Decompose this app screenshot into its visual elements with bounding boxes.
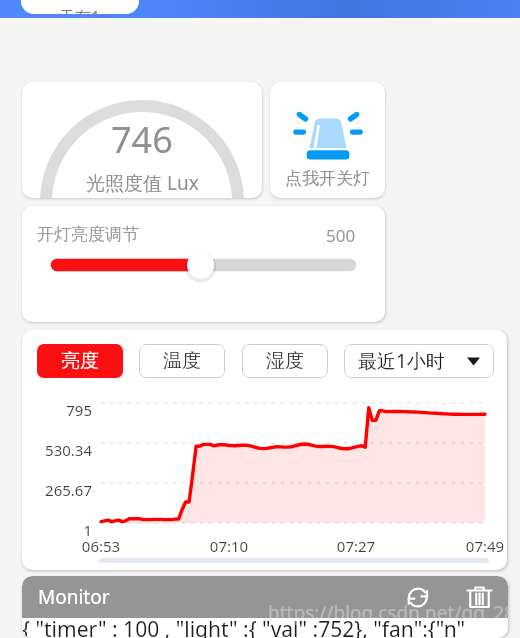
button[interactable]: 温度	[139, 344, 225, 378]
staticText: 07:49	[455, 536, 507, 556]
staticText: 06:53	[71, 536, 131, 556]
button[interactable]: Delete	[460, 578, 498, 616]
staticText: 点我开关灯	[285, 168, 370, 189]
button[interactable]: 天车1	[21, 0, 139, 14]
button[interactable]: 湿度	[242, 344, 328, 378]
button[interactable]: Refresh	[400, 578, 438, 616]
staticText: Monitor	[38, 584, 110, 610]
staticText: 07:10	[199, 536, 259, 556]
staticText: 746	[111, 115, 173, 164]
staticText: 天车1	[59, 6, 101, 14]
button[interactable]: 点我开关灯	[270, 82, 385, 198]
staticText: 开灯亮度调节	[37, 224, 139, 245]
staticText: 500	[326, 224, 356, 247]
staticText: 湿度	[266, 349, 304, 373]
staticText: https://blog.csdn.net/qq_28011437	[268, 600, 508, 626]
staticText: 最近1小时	[358, 348, 445, 374]
staticText: 795	[26, 400, 92, 420]
button[interactable]: 最近1小时	[344, 344, 494, 378]
staticText: { "timer" : 100 , "light" :{ "val" :752}…	[22, 615, 466, 638]
button[interactable]: 亮度	[37, 344, 123, 378]
staticText: 530.34	[26, 440, 92, 460]
staticText: 1	[26, 520, 92, 540]
button[interactable]: 746	[22, 82, 262, 198]
button[interactable]	[22, 206, 385, 322]
staticText: 265.67	[26, 480, 92, 500]
staticText: 光照度值 Lux	[86, 170, 199, 196]
staticText: 07:27	[326, 536, 386, 556]
staticText: 温度	[163, 349, 201, 373]
staticText: 亮度	[61, 349, 99, 373]
